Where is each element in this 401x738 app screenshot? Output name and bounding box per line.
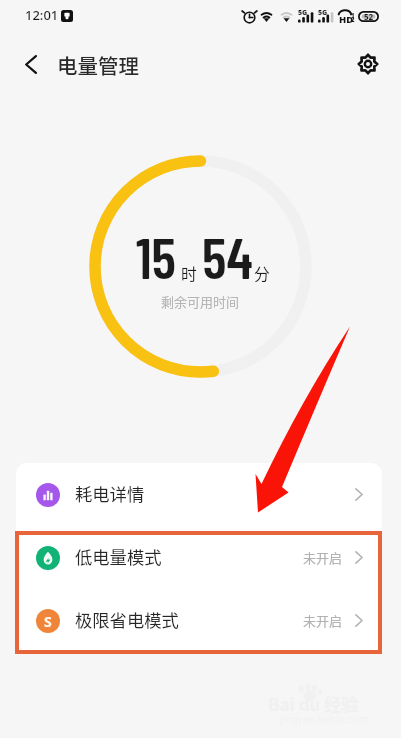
staticText: 2 (351, 16, 355, 24)
button[interactable]: 耗电详情 (16, 463, 382, 526)
staticText: HD (339, 13, 354, 26)
staticText: 耗电详情 (75, 481, 145, 506)
staticText: 剩余可用时间 (161, 292, 240, 311)
staticText: 未开启 (303, 611, 343, 630)
button[interactable]: 低电量模式 (16, 526, 382, 589)
button[interactable]: S (16, 589, 382, 652)
staticText: 未开启 (303, 548, 343, 567)
staticText: 5G (318, 8, 328, 18)
staticText: 电量管理 (57, 50, 139, 80)
staticText: S (44, 612, 52, 631)
staticText: 5G (298, 8, 308, 18)
button[interactable]: Settings (345, 41, 390, 86)
staticText: 54 (202, 222, 253, 290)
staticText: 时 (181, 262, 197, 285)
staticText: 1 (351, 12, 355, 20)
staticText: 52 (364, 11, 374, 22)
staticText: 低电量模式 (75, 544, 162, 569)
staticText: 分 (254, 262, 270, 285)
staticText: 15 (136, 222, 177, 290)
staticText: 12:01 (25, 6, 59, 24)
staticText: 极限省电模式 (75, 607, 179, 632)
button[interactable]: Back (8, 42, 53, 87)
